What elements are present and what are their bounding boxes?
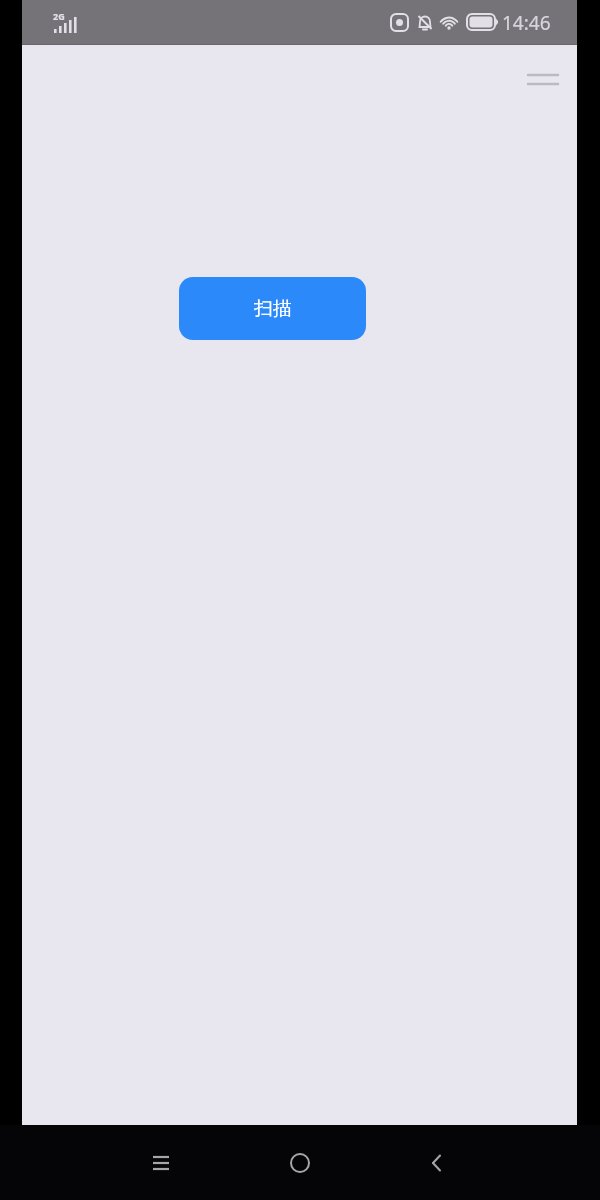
staticText: 2G [53, 10, 65, 22]
button[interactable] [141, 1143, 181, 1183]
button[interactable]: 扫描 [179, 277, 366, 340]
button[interactable] [417, 1143, 457, 1183]
staticText: 14:46 [502, 10, 551, 36]
button[interactable] [280, 1143, 320, 1183]
staticText: 扫描 [254, 297, 292, 321]
